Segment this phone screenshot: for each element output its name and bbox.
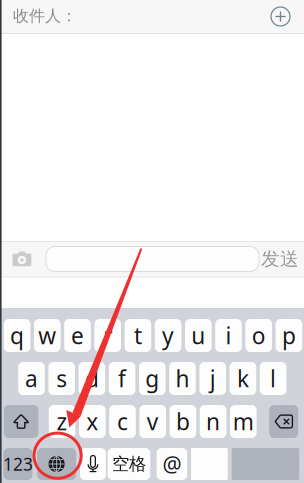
staticText: h	[175, 363, 189, 393]
button[interactable]: Shift	[4, 405, 38, 438]
button[interactable]: o	[245, 319, 272, 352]
staticText: s	[56, 363, 67, 393]
button[interactable]: v	[139, 405, 166, 438]
button[interactable]: x	[79, 405, 106, 438]
staticText: k	[237, 363, 249, 393]
staticText: z	[57, 406, 68, 436]
button[interactable]: 添加收件人	[265, 1, 296, 32]
button[interactable]: n	[200, 405, 226, 438]
staticText: a	[25, 363, 38, 393]
button[interactable]: u	[185, 319, 212, 352]
staticText: l	[270, 363, 276, 393]
button[interactable]: 相机	[7, 246, 37, 272]
staticText: d	[85, 363, 99, 393]
button[interactable]: d	[79, 362, 105, 395]
staticText: b	[176, 406, 190, 436]
staticText: w	[38, 320, 56, 350]
button[interactable]: h	[169, 362, 196, 395]
button[interactable]: a	[18, 362, 45, 395]
button[interactable]: s	[48, 362, 75, 395]
button[interactable]: p	[276, 319, 302, 352]
button[interactable]: l	[260, 362, 286, 395]
staticText: u	[191, 320, 205, 350]
button[interactable]: f	[109, 362, 135, 395]
button[interactable]: b	[170, 405, 196, 438]
staticText: 收件人：	[13, 6, 77, 26]
button[interactable]: z	[49, 405, 75, 438]
staticText: 发送	[261, 247, 299, 270]
staticText: g	[145, 363, 159, 393]
staticText: 空格	[112, 453, 146, 475]
button[interactable]: 切换键盘	[37, 448, 76, 480]
staticText: j	[210, 363, 216, 393]
button[interactable]: 删除	[269, 405, 298, 438]
staticText: f	[118, 363, 126, 393]
staticText: v	[147, 406, 159, 436]
staticText: x	[86, 406, 98, 436]
button[interactable]: e	[64, 319, 91, 352]
button[interactable]: k	[230, 362, 256, 395]
button[interactable]: i	[215, 319, 242, 352]
button[interactable]: @	[157, 448, 187, 480]
staticText: @	[162, 450, 181, 478]
staticText: i	[225, 320, 231, 350]
staticText: t	[134, 320, 142, 350]
staticText: p	[282, 320, 296, 350]
staticText: y	[162, 320, 174, 350]
staticText: e	[71, 320, 84, 350]
button[interactable]: 发送	[257, 243, 303, 274]
staticText: q	[10, 320, 24, 350]
button[interactable]: 语音输入	[80, 448, 106, 480]
button[interactable]: 123	[3, 448, 32, 480]
staticText: n	[206, 406, 220, 436]
staticText: c	[117, 406, 128, 436]
button[interactable]: m	[230, 405, 257, 438]
button[interactable]: y	[155, 319, 181, 352]
button[interactable]: 空格	[108, 448, 150, 480]
staticText: m	[233, 406, 254, 436]
button[interactable]: g	[139, 362, 166, 395]
button[interactable]: c	[109, 405, 136, 438]
staticText: 123	[3, 452, 33, 475]
staticText: r	[103, 320, 112, 350]
staticText: o	[252, 320, 266, 350]
button[interactable]: t	[125, 319, 151, 352]
button[interactable]: q	[4, 319, 30, 352]
button[interactable]: r	[94, 319, 121, 352]
button[interactable]: w	[34, 319, 61, 352]
button[interactable]: j	[199, 362, 226, 395]
